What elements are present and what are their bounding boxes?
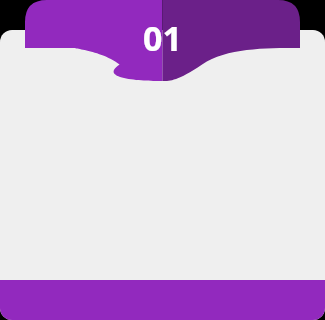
button[interactable]: Step 01 card	[0, 0, 325, 320]
